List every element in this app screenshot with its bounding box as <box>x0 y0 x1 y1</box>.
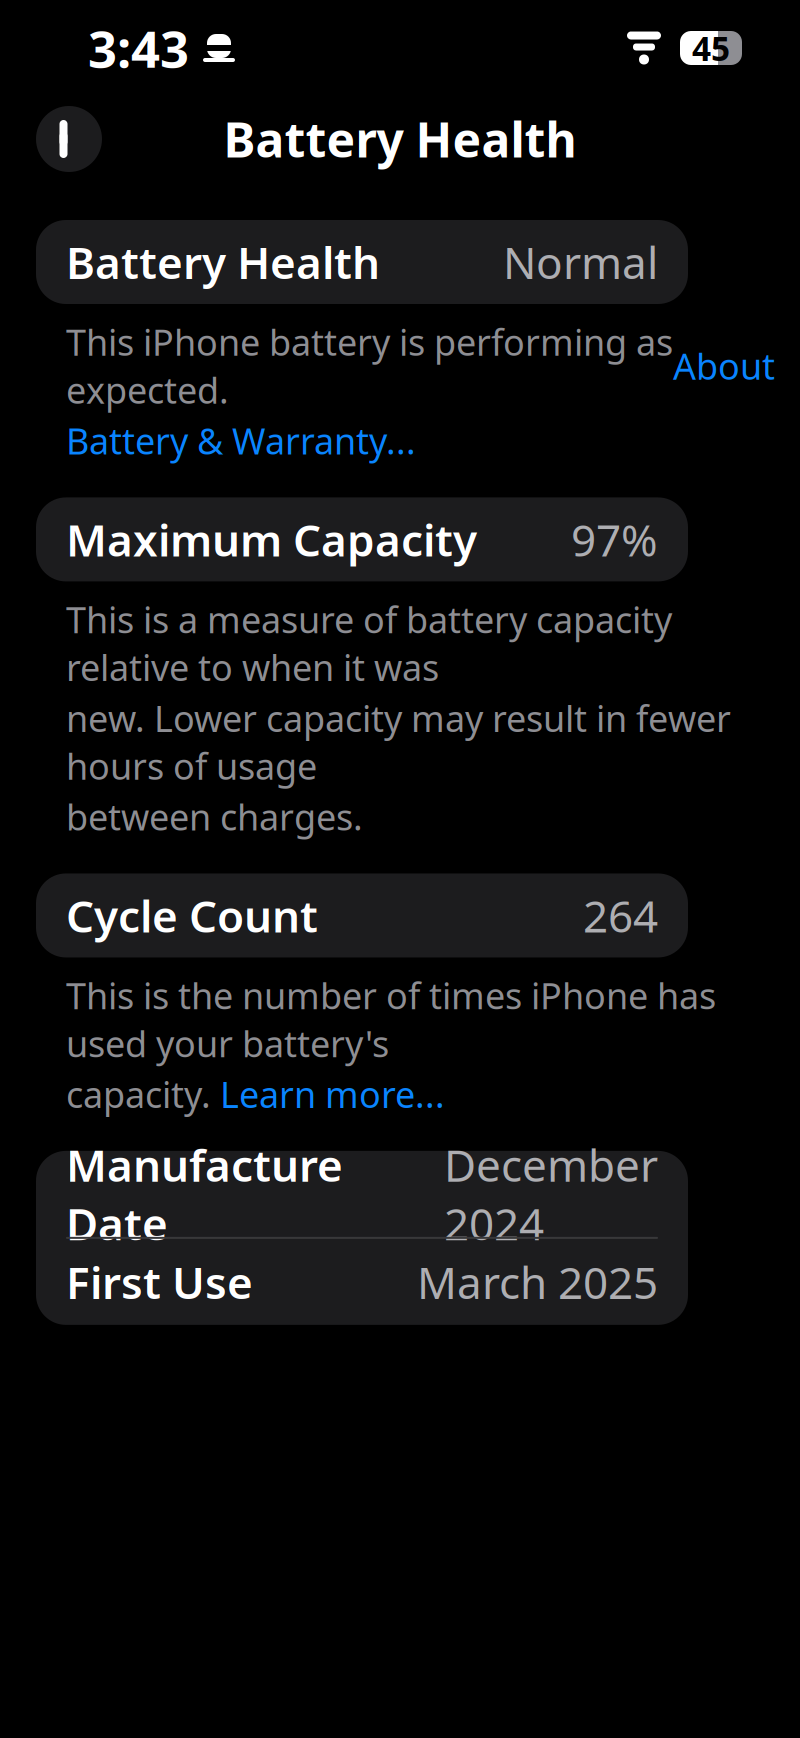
button[interactable]: Back <box>36 106 102 172</box>
staticText: About <box>673 342 775 390</box>
button[interactable]: First Use <box>36 1239 688 1325</box>
staticText: Maximum Capacity <box>66 510 477 569</box>
staticText: Battery Health <box>223 107 576 171</box>
staticText: Learn more... <box>220 1070 445 1118</box>
staticText: This is the number of times iPhone has u… <box>66 971 716 1067</box>
button[interactable]: Battery & Warranty... <box>66 417 416 464</box>
staticText: new. Lower capacity may result in fewer … <box>66 694 731 790</box>
staticText: First Use <box>66 1253 253 1311</box>
staticText: 97% <box>571 510 658 569</box>
staticText: This is a measure of battery capacity re… <box>66 595 672 691</box>
staticText: Manufacture Date <box>66 1135 343 1252</box>
staticText: 264 <box>583 886 658 945</box>
staticText: This iPhone battery is performing as exp… <box>66 318 673 414</box>
staticText: Cycle Count <box>66 886 318 945</box>
button[interactable]: Manufacture Date <box>36 1151 688 1237</box>
staticText: between charges. <box>66 793 363 840</box>
staticText: 3:43 <box>88 14 189 82</box>
staticText: Battery & Warranty... <box>66 417 416 464</box>
staticText: Normal <box>503 233 658 291</box>
button[interactable]: Battery Health <box>36 219 688 305</box>
button[interactable]: Learn more... <box>220 1070 445 1118</box>
button[interactable]: Cycle Count <box>36 872 688 958</box>
staticText: March 2025 <box>417 1253 658 1311</box>
staticText: capacity. <box>66 1070 220 1118</box>
button[interactable]: About <box>673 342 775 390</box>
staticText: Battery Health <box>66 233 380 291</box>
staticText: 45 <box>692 26 730 70</box>
button[interactable]: Maximum Capacity <box>36 496 688 582</box>
staticText: December 2024 <box>444 1135 658 1252</box>
